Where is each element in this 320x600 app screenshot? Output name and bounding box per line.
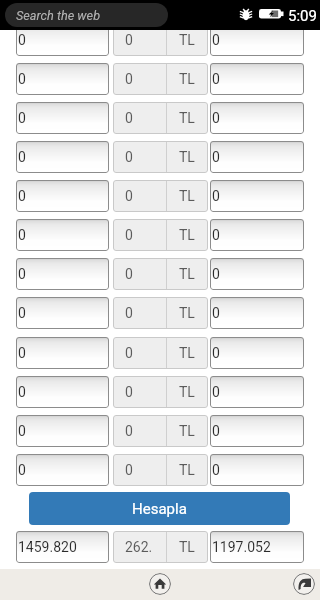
staticText: 0 bbox=[18, 110, 26, 126]
button[interactable]: Forward bbox=[293, 573, 315, 595]
button[interactable]: 0 bbox=[210, 337, 304, 369]
button[interactable]: 0 bbox=[16, 376, 109, 408]
button[interactable]: 0 bbox=[16, 258, 109, 290]
staticText: 0 bbox=[18, 384, 26, 400]
button[interactable]: 0 bbox=[210, 258, 304, 290]
staticText: 0 bbox=[18, 32, 26, 48]
button[interactable]: 0 bbox=[16, 24, 109, 56]
staticText: 0 bbox=[212, 110, 220, 126]
button[interactable]: 1459.820 bbox=[16, 531, 109, 563]
staticText: TL bbox=[179, 462, 195, 478]
button[interactable]: Search the web bbox=[5, 3, 168, 27]
button[interactable]: 0 bbox=[16, 337, 109, 369]
button[interactable]: TL bbox=[166, 337, 208, 369]
button[interactable]: 0 bbox=[16, 415, 109, 447]
staticText: TL bbox=[179, 110, 195, 126]
staticText: 0 bbox=[18, 345, 26, 361]
staticText: 0 bbox=[125, 188, 133, 204]
button[interactable]: TL bbox=[166, 63, 208, 95]
staticText: 262. bbox=[125, 539, 153, 555]
button[interactable]: Home bbox=[149, 573, 171, 595]
button[interactable]: 0 bbox=[113, 24, 166, 56]
button[interactable]: TL bbox=[166, 297, 208, 329]
button[interactable]: 0 bbox=[113, 63, 166, 95]
button[interactable]: 0 bbox=[113, 454, 166, 486]
button[interactable]: TL bbox=[166, 102, 208, 134]
staticText: 0 bbox=[18, 71, 26, 87]
staticText: 5:09 bbox=[288, 7, 317, 25]
staticText: 0 bbox=[212, 384, 220, 400]
staticText: TL bbox=[179, 266, 195, 282]
button[interactable]: 0 bbox=[210, 297, 304, 329]
staticText: 1459.820 bbox=[18, 539, 77, 555]
staticText: 0 bbox=[125, 384, 133, 400]
button[interactable]: 0 bbox=[16, 454, 109, 486]
staticText: TL bbox=[179, 188, 195, 204]
button[interactable]: TL bbox=[166, 258, 208, 290]
button[interactable]: 262. bbox=[113, 531, 166, 563]
button[interactable]: TL bbox=[166, 219, 208, 251]
staticText: 0 bbox=[18, 462, 26, 478]
button[interactable]: 0 bbox=[210, 454, 304, 486]
button[interactable]: 0 bbox=[16, 219, 109, 251]
button[interactable]: 0 bbox=[113, 337, 166, 369]
staticText: 0 bbox=[125, 71, 133, 87]
staticText: 0 bbox=[212, 462, 220, 478]
button[interactable]: 0 bbox=[113, 180, 166, 212]
staticText: TL bbox=[179, 227, 195, 243]
button[interactable]: 1197.052 bbox=[210, 531, 304, 563]
button[interactable]: TL bbox=[166, 415, 208, 447]
button[interactable]: 0 bbox=[16, 102, 109, 134]
button[interactable]: 0 bbox=[113, 102, 166, 134]
button[interactable]: TL bbox=[166, 454, 208, 486]
staticText: 0 bbox=[125, 305, 133, 321]
button[interactable]: TL bbox=[166, 141, 208, 173]
staticText: Hesapla bbox=[132, 500, 187, 518]
staticText: TL bbox=[179, 149, 195, 165]
button[interactable]: TL bbox=[166, 180, 208, 212]
button[interactable]: 0 bbox=[113, 376, 166, 408]
staticText: 0 bbox=[125, 423, 133, 439]
button[interactable]: 0 bbox=[16, 297, 109, 329]
staticText: TL bbox=[179, 539, 195, 555]
staticText: TL bbox=[179, 71, 195, 87]
button[interactable]: 0 bbox=[113, 219, 166, 251]
button[interactable]: 0 bbox=[113, 141, 166, 173]
button[interactable]: 0 bbox=[16, 63, 109, 95]
staticText: 0 bbox=[18, 149, 26, 165]
button[interactable]: 0 bbox=[113, 297, 166, 329]
button[interactable]: 0 bbox=[210, 63, 304, 95]
staticText: TL bbox=[179, 305, 195, 321]
button[interactable]: TL bbox=[166, 24, 208, 56]
staticText: 0 bbox=[18, 266, 26, 282]
staticText: TL bbox=[179, 384, 195, 400]
button[interactable]: 0 bbox=[113, 258, 166, 290]
staticText: 0 bbox=[212, 71, 220, 87]
button[interactable]: 0 bbox=[210, 376, 304, 408]
button[interactable]: 0 bbox=[210, 102, 304, 134]
button[interactable]: 0 bbox=[210, 24, 304, 56]
staticText: 0 bbox=[125, 266, 133, 282]
staticText: 0 bbox=[212, 345, 220, 361]
staticText: 0 bbox=[125, 462, 133, 478]
button[interactable]: 0 bbox=[210, 415, 304, 447]
button[interactable]: Hesapla bbox=[29, 492, 290, 525]
staticText: 0 bbox=[125, 149, 133, 165]
button[interactable]: 0 bbox=[210, 141, 304, 173]
button[interactable]: 0 bbox=[113, 415, 166, 447]
button[interactable]: 0 bbox=[210, 180, 304, 212]
staticText: 0 bbox=[212, 32, 220, 48]
button[interactable]: 0 bbox=[210, 219, 304, 251]
button[interactable]: 0 bbox=[16, 141, 109, 173]
staticText: 0 bbox=[18, 227, 26, 243]
staticText: 0 bbox=[18, 423, 26, 439]
staticText: 0 bbox=[18, 188, 26, 204]
staticText: 0 bbox=[212, 305, 220, 321]
staticText: 0 bbox=[125, 345, 133, 361]
staticText: TL bbox=[179, 423, 195, 439]
staticText: 0 bbox=[212, 423, 220, 439]
button[interactable]: TL bbox=[166, 376, 208, 408]
button[interactable]: TL bbox=[166, 531, 208, 563]
staticText: 0 bbox=[212, 149, 220, 165]
button[interactable]: 0 bbox=[16, 180, 109, 212]
